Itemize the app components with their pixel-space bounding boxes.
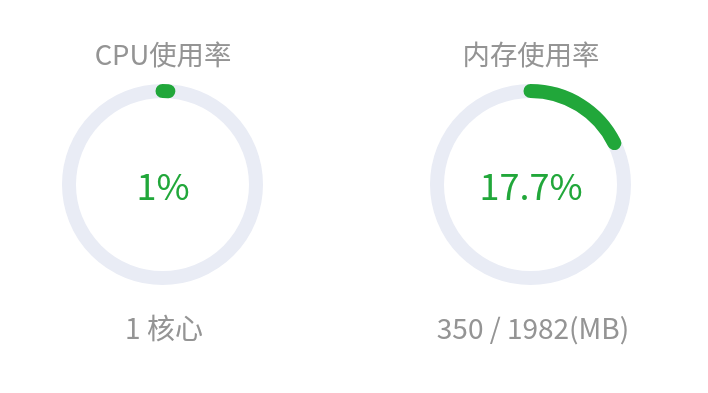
staticText: 1 核心 (0, 307, 364, 348)
staticText: 内存使用率 (331, 33, 708, 73)
button[interactable]: CPU使用率 (62, 84, 263, 285)
button[interactable]: 内存使用率 (430, 84, 631, 285)
staticText: 17.7% (331, 158, 708, 210)
staticText: 1% (0, 158, 363, 210)
staticText: CPU使用率 (0, 33, 363, 73)
staticText: 350 / 1982(MB) (333, 307, 708, 348)
